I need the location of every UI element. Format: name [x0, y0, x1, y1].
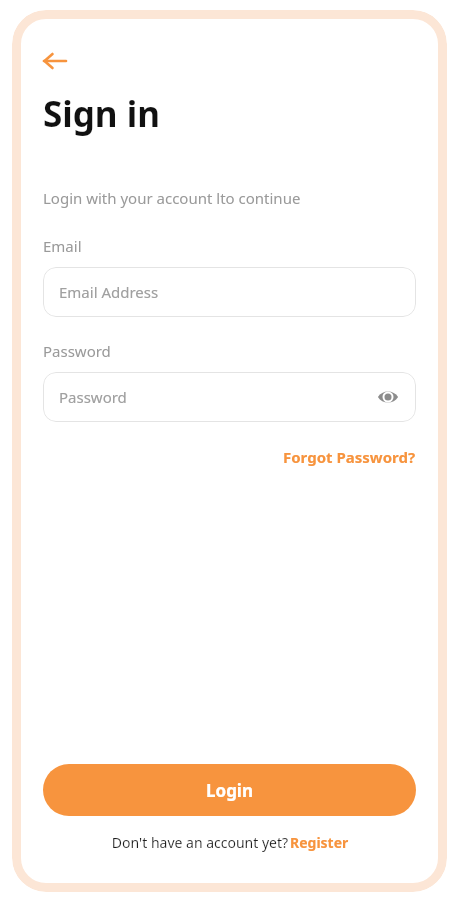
button[interactable]: Password [43, 372, 416, 422]
button[interactable]: Back [43, 46, 73, 76]
staticText: Password [43, 341, 111, 361]
button[interactable]: Show password [374, 383, 402, 411]
button[interactable]: Email Address [43, 267, 416, 317]
button[interactable]: Register [290, 833, 349, 852]
button[interactable]: Login [43, 764, 416, 816]
button[interactable]: Forgot Password? [283, 445, 416, 469]
staticText: Login with your account lto continue [43, 188, 301, 208]
staticText: Password [59, 387, 374, 407]
staticText: Email Address [59, 282, 159, 302]
staticText: Forgot Password? [283, 447, 416, 467]
staticText: Email [43, 236, 82, 256]
staticText: Sign in [43, 90, 160, 138]
staticText: Don't have an account yet? [110, 833, 290, 852]
staticText: Register [290, 833, 349, 852]
staticText: Login [206, 779, 254, 802]
